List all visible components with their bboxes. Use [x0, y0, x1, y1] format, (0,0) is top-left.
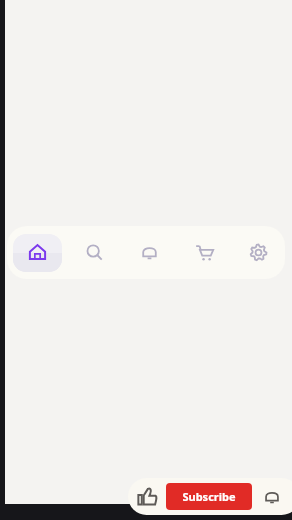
- button[interactable]: Subscribe: [166, 483, 252, 510]
- button[interactable]: Home: [7, 226, 67, 279]
- button[interactable]: Notifications: [252, 478, 292, 515]
- button[interactable]: Settings: [232, 226, 285, 279]
- staticText: Subscribe: [182, 489, 236, 504]
- button[interactable]: Like: [128, 478, 166, 515]
- button[interactable]: Search: [67, 226, 121, 279]
- button[interactable]: Cart: [177, 226, 232, 279]
- button[interactable]: Notifications: [121, 226, 177, 279]
